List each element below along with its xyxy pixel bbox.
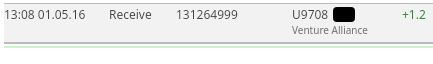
staticText: 131264999 — [176, 6, 238, 22]
staticText: U9708 — [292, 6, 329, 22]
staticText: Venture Alliance — [292, 23, 368, 37]
staticText: Receive — [109, 6, 152, 22]
button[interactable]: 13:08 01.05.16 — [4, 4, 433, 42]
staticText: 13:08 01.05.16 — [4, 6, 86, 22]
staticText: +1.2 — [402, 6, 426, 22]
